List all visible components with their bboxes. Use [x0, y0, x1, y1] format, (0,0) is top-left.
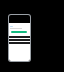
button[interactable] [11, 31, 27, 33]
